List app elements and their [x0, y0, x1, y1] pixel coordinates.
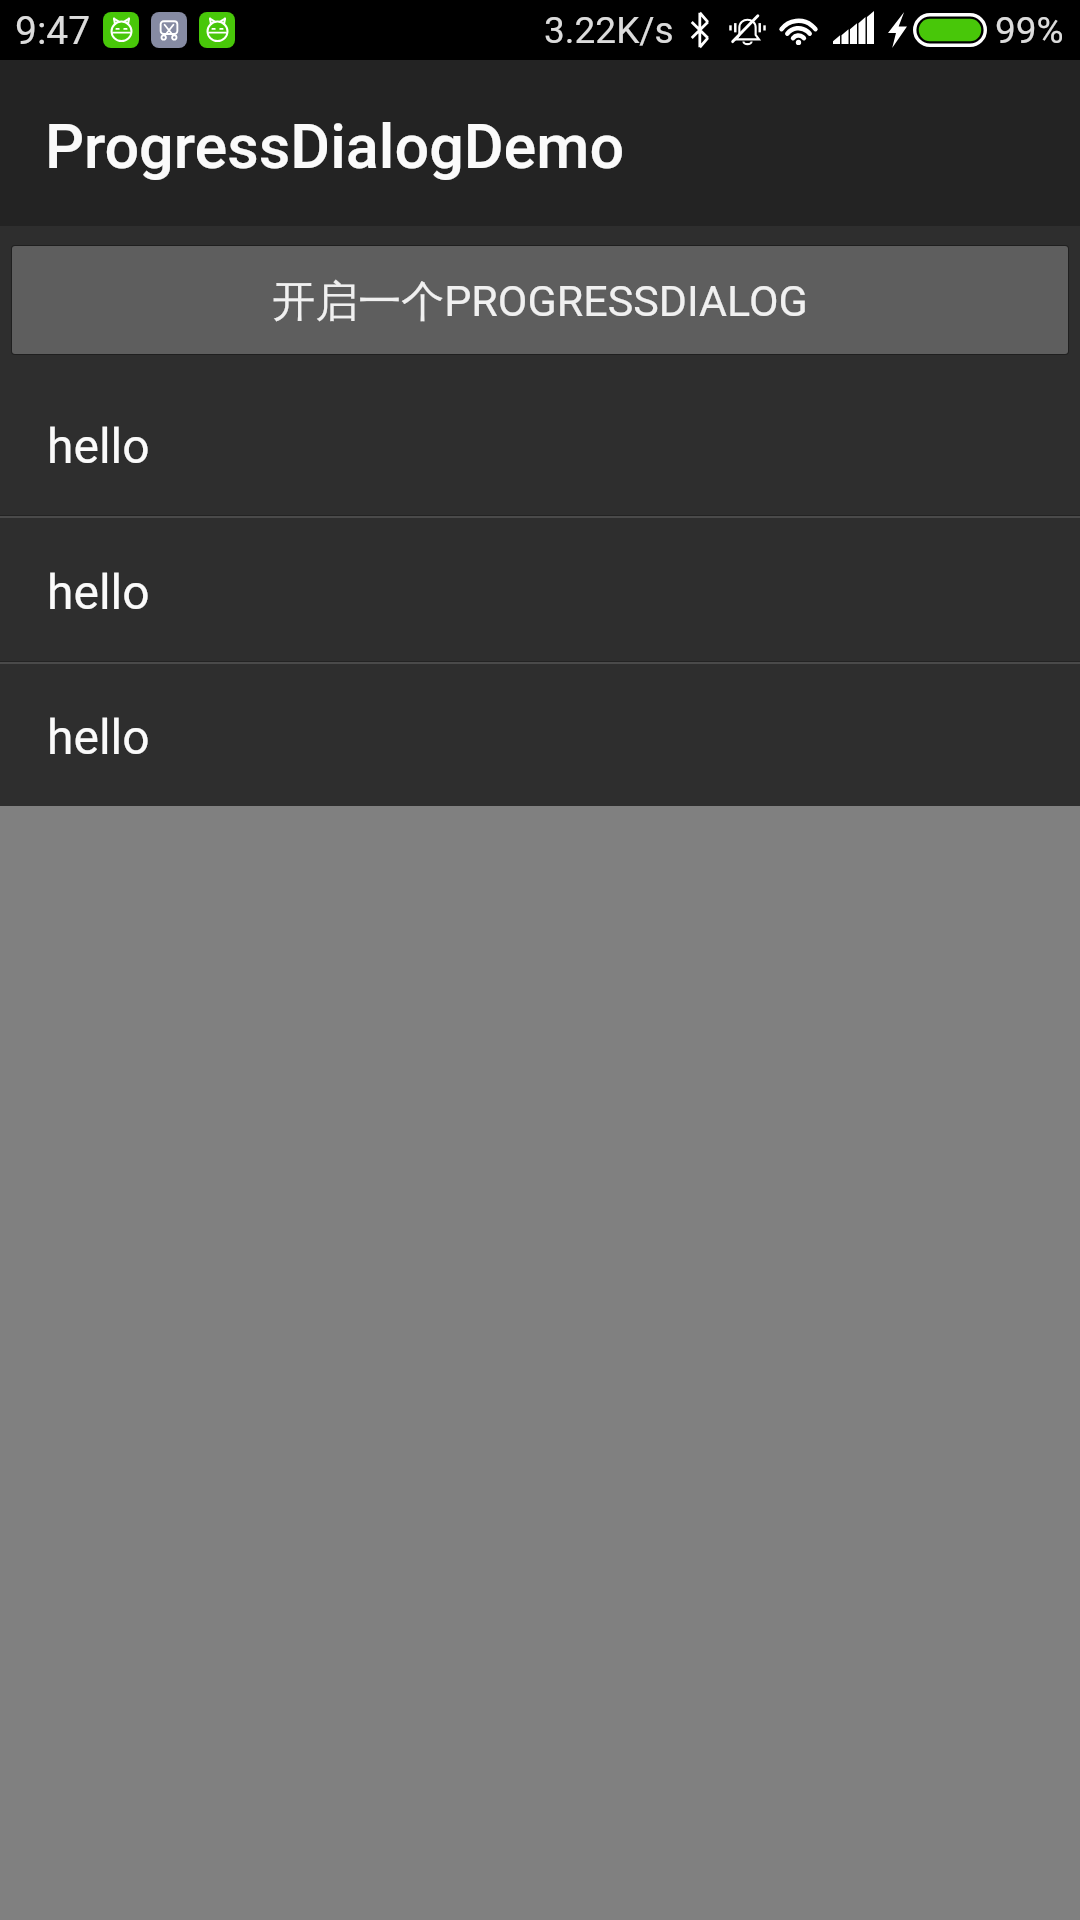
- other: Android app notification: [103, 12, 139, 48]
- staticText: 3.22K/s: [544, 9, 674, 52]
- other: Android app notification: [199, 12, 235, 48]
- other: Bluetooth on: [691, 12, 709, 48]
- staticText: 开启一个PROGRESSDIALOG: [272, 275, 808, 329]
- other: Charging: [888, 12, 907, 48]
- staticText: hello: [47, 418, 150, 474]
- button[interactable]: 开启一个PROGRESSDIALOG: [12, 246, 1068, 354]
- button[interactable]: hello: [0, 518, 1080, 661]
- staticText: hello: [47, 564, 150, 620]
- other: Wi-Fi signal full: [777, 17, 820, 44]
- button[interactable]: hello: [0, 370, 1080, 515]
- other: Mobile signal full: [833, 16, 874, 44]
- staticText: ProgressDialogDemo: [45, 111, 625, 182]
- staticText: hello: [47, 709, 150, 765]
- other: Screenshot notification: [151, 12, 187, 48]
- button[interactable]: hello: [0, 664, 1080, 806]
- staticText: 99%: [995, 9, 1064, 52]
- other: Battery 99 percent: [913, 13, 987, 47]
- staticText: 9:47: [15, 8, 91, 54]
- other: Ringer silenced: [729, 12, 766, 49]
